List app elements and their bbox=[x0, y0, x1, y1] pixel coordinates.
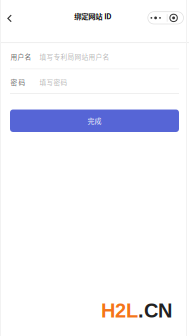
staticText: H2L bbox=[101, 299, 138, 322]
staticText: 完成 bbox=[87, 116, 101, 126]
staticText: 填写密码 bbox=[39, 77, 67, 87]
staticText: 绑定网站 ID bbox=[74, 11, 111, 21]
staticText: 密 码 bbox=[11, 77, 26, 87]
staticText: 填写专利局网站用户名 bbox=[39, 52, 109, 62]
button[interactable]: Back bbox=[0, 9, 18, 27]
staticText: 用户名 bbox=[11, 52, 32, 62]
button[interactable]: 用户名 bbox=[0, 43, 189, 68]
staticText: .CN bbox=[138, 299, 172, 322]
button[interactable]: More options bbox=[148, 12, 183, 24]
button[interactable]: 完成 bbox=[10, 109, 179, 132]
button[interactable]: 密 码 bbox=[0, 69, 189, 93]
